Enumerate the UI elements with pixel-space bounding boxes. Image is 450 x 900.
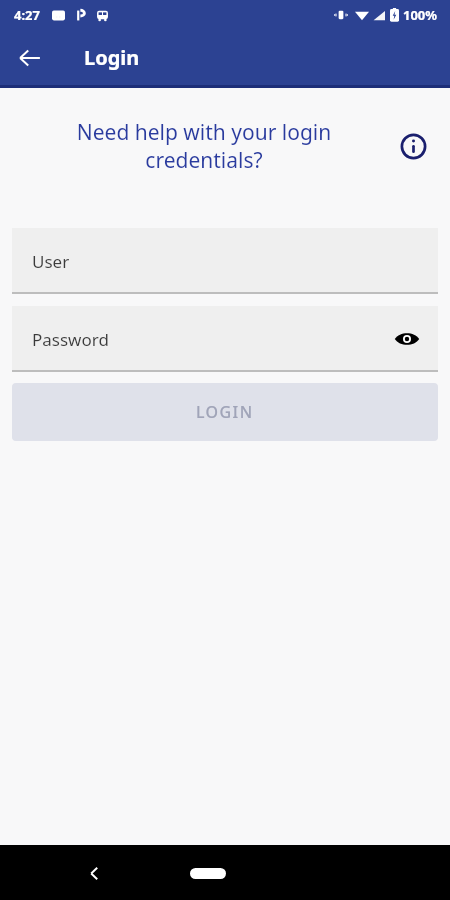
- staticText: 100%: [403, 6, 438, 24]
- button[interactable]: Back: [8, 36, 52, 80]
- button[interactable]: User: [12, 228, 438, 294]
- staticText: 4:27: [14, 6, 40, 24]
- button[interactable]: Home: [178, 853, 238, 893]
- button[interactable]: Information: [392, 125, 434, 167]
- staticText: Login: [84, 44, 140, 71]
- staticText: Need help with your login credentials?: [16, 118, 392, 174]
- button[interactable]: Password: [12, 306, 438, 372]
- button[interactable]: Need help with your login credentials?: [16, 118, 392, 174]
- staticText: LOGIN: [196, 401, 254, 423]
- button[interactable]: Show password: [390, 322, 424, 356]
- staticText: User: [32, 250, 70, 273]
- staticText: Password: [32, 328, 109, 351]
- button[interactable]: LOGIN: [12, 383, 438, 441]
- button[interactable]: Back: [72, 851, 116, 895]
